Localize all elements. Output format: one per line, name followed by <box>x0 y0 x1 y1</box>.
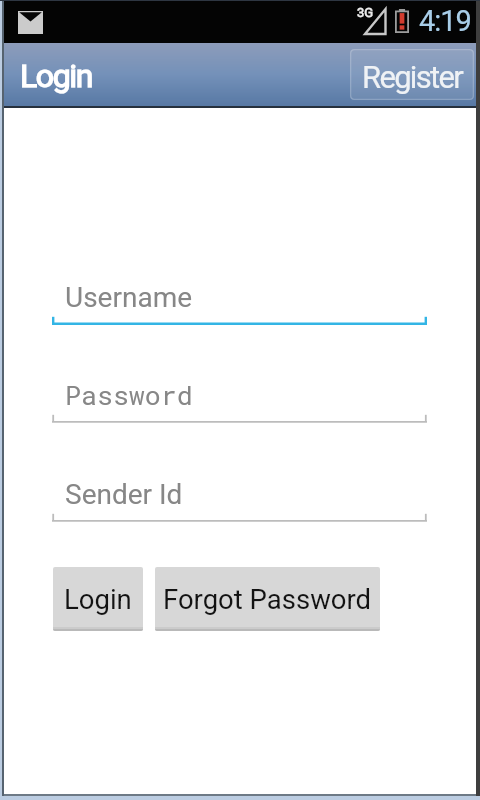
staticText: Username <box>65 281 193 314</box>
other: New mail <box>18 11 43 34</box>
staticText: Login <box>20 57 92 95</box>
staticText: 4:19 <box>419 4 471 38</box>
staticText: Password <box>65 377 193 412</box>
staticText: 3G <box>357 5 374 20</box>
staticText: Register <box>362 59 462 95</box>
button[interactable]: Password <box>52 379 427 423</box>
button[interactable]: Forgot Password <box>155 567 380 631</box>
button[interactable]: Username <box>52 281 427 325</box>
button[interactable]: Sender Id <box>52 478 427 522</box>
button[interactable]: Login <box>53 567 143 631</box>
staticText: Sender Id <box>65 478 183 511</box>
button[interactable]: Register <box>350 49 474 100</box>
staticText: Forgot Password <box>163 583 372 615</box>
staticText: Login <box>64 583 132 615</box>
